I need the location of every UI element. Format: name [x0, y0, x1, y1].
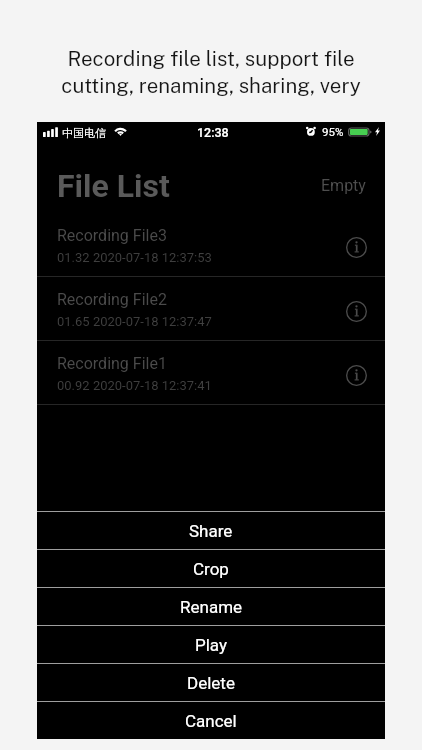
button[interactable]: Recording File1	[37, 341, 385, 404]
staticText: Crop	[193, 559, 229, 579]
button[interactable]: Recording File2	[37, 277, 385, 340]
button[interactable]: Delete	[37, 664, 385, 701]
staticText: 01.65 2020-07-18 12:37:47	[57, 314, 212, 329]
staticText: 中国电信	[62, 126, 106, 140]
button[interactable]: Recording File3	[37, 213, 385, 276]
button[interactable]: File info	[343, 298, 369, 324]
staticText: Rename	[180, 597, 243, 617]
button[interactable]: Crop	[37, 550, 385, 587]
button[interactable]: Share	[37, 512, 385, 549]
staticText: cutting, renaming, sharing, very	[61, 74, 361, 98]
staticText: Empty	[321, 176, 366, 195]
staticText: Cancel	[185, 711, 237, 731]
staticText: Recording File3	[57, 226, 167, 245]
button[interactable]: Play	[37, 626, 385, 663]
staticText: Recording File1	[57, 354, 167, 373]
button[interactable]: Cancel	[37, 702, 385, 739]
staticText: File List	[57, 167, 170, 205]
staticText: 00.92 2020-07-18 12:37:41	[57, 378, 212, 393]
button[interactable]: Empty	[308, 167, 384, 204]
staticText: Recording file list, support file	[67, 47, 355, 71]
staticText: 12:38	[197, 125, 229, 140]
staticText: Play	[195, 635, 228, 655]
staticText: 95%	[322, 125, 344, 138]
button[interactable]: File info	[343, 362, 369, 388]
staticText: Delete	[187, 673, 235, 693]
button[interactable]: Rename	[37, 588, 385, 625]
staticText: Recording File2	[57, 290, 167, 309]
staticText: 01.32 2020-07-18 12:37:53	[57, 250, 212, 265]
button[interactable]: File info	[343, 234, 369, 260]
staticText: Share	[189, 521, 233, 541]
